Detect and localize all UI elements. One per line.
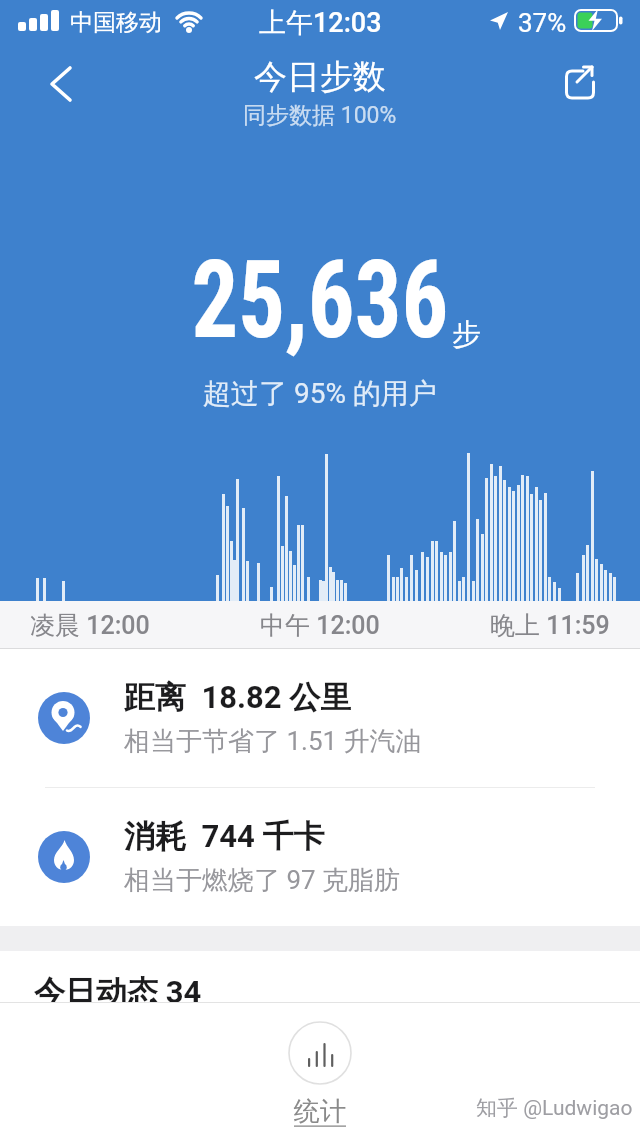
staticText: 距离 18.82 公里 [124,678,352,717]
staticText: 相当于燃烧了 97 克脂肪 [124,864,401,897]
staticText: 知乎 @Ludwigao [476,1095,633,1121]
button[interactable] [565,64,597,100]
staticText: 今日动态 34 [34,973,202,1012]
staticText: 同步数据 100% [243,101,397,130]
staticText: 上午12:03 [259,6,382,40]
staticText: 相当于节省了 1.51 升汽油 [124,725,422,758]
staticText: 今日步数 [254,56,386,98]
button[interactable] [48,66,74,102]
button[interactable]: 距离 18.82 公里 [0,649,640,787]
staticText: 晚上 11:59 [490,610,610,641]
staticText: 中国移动 [70,8,162,37]
staticText: 中午 12:00 [260,610,380,641]
button[interactable]: 消耗 744 千卡 [0,788,640,926]
staticText: 凌晨 12:00 [30,610,150,641]
staticText: 超过了 95% 的用户 [203,376,437,411]
staticText: 消耗 744 千卡 [124,817,325,856]
staticText: 步 [452,316,481,353]
staticText: 统计 [294,1095,346,1128]
staticText: 37% [518,8,567,38]
staticText: 25,636 [191,237,448,364]
button[interactable]: 统计 [288,1021,352,1128]
